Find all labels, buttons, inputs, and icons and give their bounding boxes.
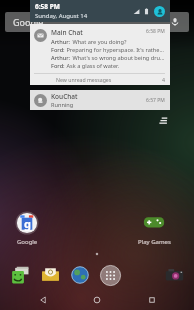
staticText: 6:58 PM	[35, 2, 60, 11]
staticText: Ask a glass of water.	[65, 62, 119, 70]
button[interactable]: g	[6, 210, 48, 246]
staticText: Running	[51, 101, 74, 109]
button[interactable]: Camera	[159, 260, 189, 290]
staticText: What are you doing?	[71, 38, 127, 46]
staticText: Google	[13, 16, 44, 28]
button[interactable]: Browser	[65, 260, 95, 290]
staticText: Preparing for hyperspace. It's rather un…	[65, 46, 165, 54]
button[interactable]: Apps	[95, 260, 125, 290]
staticText: 6:57 PM	[146, 97, 165, 104]
staticText: Main Chat	[51, 28, 146, 37]
staticText: Arthur:	[51, 54, 71, 62]
staticText: Ford:	[51, 46, 65, 54]
button[interactable]: Messaging	[5, 260, 35, 290]
button[interactable]: Voice search	[165, 12, 185, 32]
button[interactable]: New unread messages	[34, 74, 165, 85]
staticText: 6:58 PM	[146, 28, 165, 35]
staticText: Ford:	[51, 62, 65, 70]
button[interactable]: Google	[5, 12, 189, 32]
staticText: Arthur:	[51, 38, 71, 46]
staticText: 4	[162, 76, 165, 83]
button[interactable]: KouChat	[30, 90, 170, 110]
button[interactable]: Recents	[140, 290, 164, 310]
button[interactable]: Email	[35, 260, 65, 290]
button[interactable]: Play Games	[133, 210, 175, 246]
staticText: Sunday, August 14	[35, 12, 88, 20]
staticText: New unread messages	[56, 76, 112, 83]
button[interactable]: User profile	[154, 6, 165, 17]
staticText: What's so wrong about being drunk?	[71, 54, 165, 62]
button[interactable]: Main Chat	[30, 24, 170, 85]
staticText: KouChat	[51, 92, 78, 101]
staticText: Play Games	[138, 238, 171, 246]
button[interactable]: More notifications	[156, 113, 170, 127]
staticText: g	[24, 216, 31, 231]
staticText: Google	[17, 238, 38, 246]
button[interactable]: Back	[31, 290, 55, 310]
button[interactable]: Home	[85, 290, 109, 310]
